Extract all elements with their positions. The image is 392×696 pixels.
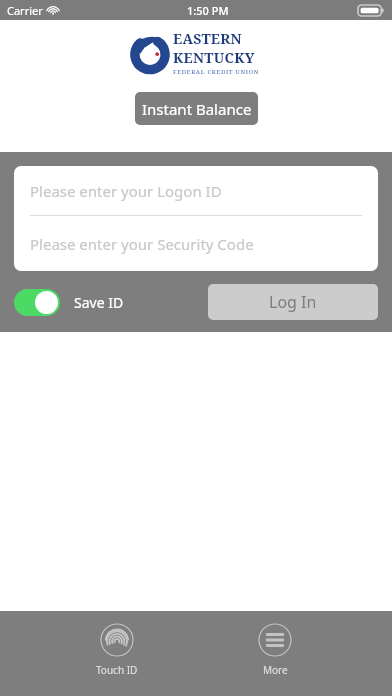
staticText: Save ID (74, 293, 124, 312)
button[interactable]: Touch ID (77, 623, 157, 677)
staticText: Please enter your Logon ID (30, 181, 222, 201)
staticText: Log In (269, 291, 317, 313)
staticText: EASTERN (173, 29, 242, 48)
staticText: Touch ID (96, 663, 138, 677)
staticText: 1:50 PM (187, 3, 229, 18)
button[interactable]: Please enter your Logon ID (30, 166, 362, 215)
button[interactable]: Save ID (14, 289, 124, 316)
staticText: KENTUCKY (173, 48, 255, 67)
staticText: Instant Balance (142, 99, 252, 119)
staticText: More (263, 663, 288, 677)
button[interactable]: More (235, 623, 315, 677)
button[interactable]: Log In (208, 284, 378, 320)
staticText: Carrier (7, 3, 43, 18)
button[interactable]: Instant Balance (135, 92, 258, 125)
staticText: FEDERAL CREDIT UNION (173, 68, 260, 76)
staticText: Please enter your Security Code (30, 234, 254, 254)
button[interactable]: Please enter your Security Code (30, 216, 362, 271)
